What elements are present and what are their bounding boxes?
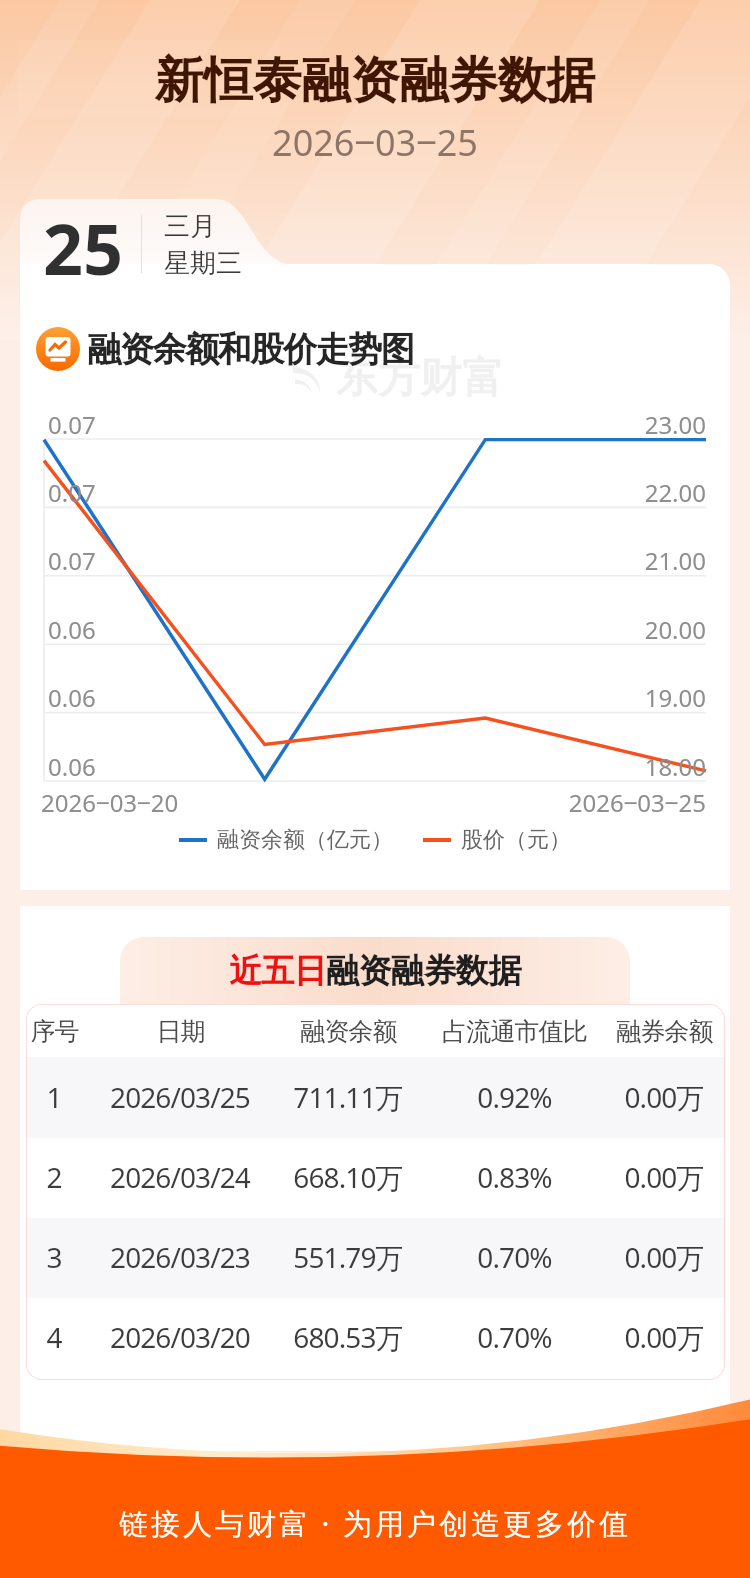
- staticText: 18.00: [566, 750, 706, 783]
- staticText: 占流通市值比: [442, 1016, 587, 1047]
- staticText: 融券余额: [616, 1016, 713, 1047]
- staticText: 25: [43, 200, 124, 280]
- staticText: 680.53万: [293, 1318, 403, 1356]
- button[interactable]: 25: [20, 199, 295, 279]
- staticText: 0.06: [48, 681, 96, 714]
- staticText: 4: [46, 1318, 62, 1356]
- staticText: 2026/03/20: [110, 1318, 250, 1356]
- staticText: 2026/03/24: [110, 1158, 250, 1196]
- staticText: 0.07: [48, 408, 96, 441]
- staticText: 0.07: [48, 544, 96, 577]
- staticText: 东方财富: [336, 352, 504, 405]
- staticText: 20.00: [566, 613, 706, 646]
- staticText: 2026‒03‒20: [41, 786, 241, 819]
- staticText: 新恒泰融资融券数据: [0, 50, 750, 112]
- staticText: 2026/03/23: [110, 1238, 250, 1276]
- staticText: 0.00万: [624, 1158, 704, 1196]
- staticText: 1: [46, 1078, 62, 1116]
- staticText: 3: [46, 1238, 62, 1276]
- staticText: 0.07: [48, 476, 96, 509]
- staticText: 711.11万: [293, 1078, 403, 1116]
- staticText: 21.00: [566, 544, 706, 577]
- staticText: 日期: [156, 1016, 205, 1047]
- staticText: 19.00: [566, 681, 706, 714]
- staticText: 0.00万: [624, 1238, 704, 1276]
- staticText: 链接人与财富 · 为用户创造更多价值: [0, 1503, 750, 1543]
- staticText: 22.00: [566, 476, 706, 509]
- staticText: 551.79万: [293, 1238, 403, 1276]
- staticText: 三月: [164, 210, 216, 243]
- staticText: 序号: [30, 1016, 79, 1047]
- staticText: 2026‒03‒25: [0, 118, 750, 167]
- staticText: 融资余额和股价走势图: [88, 328, 414, 371]
- staticText: 0.06: [48, 613, 96, 646]
- staticText: 融资余额: [300, 1016, 397, 1047]
- staticText: 0.00万: [624, 1078, 704, 1116]
- staticText: 0.70%: [477, 1318, 552, 1356]
- staticText: 0.92%: [477, 1078, 552, 1116]
- staticText: 2026/03/25: [110, 1078, 250, 1116]
- staticText: 0.83%: [477, 1158, 552, 1196]
- staticText: 0.00万: [624, 1318, 704, 1356]
- other: 走势图: [36, 327, 80, 371]
- staticText: 融资余额（亿元）: [217, 826, 393, 854]
- staticText: 668.10万: [293, 1158, 403, 1196]
- staticText: 23.00: [566, 408, 706, 441]
- staticText: 0.70%: [477, 1238, 552, 1276]
- staticText: 股价（元）: [461, 826, 571, 854]
- staticText: 0.06: [48, 750, 96, 783]
- staticText: 近五日融资融券数据: [229, 950, 521, 992]
- staticText: 2: [46, 1158, 62, 1196]
- staticText: 2026‒03‒25: [506, 786, 706, 819]
- staticText: 星期三: [164, 247, 242, 280]
